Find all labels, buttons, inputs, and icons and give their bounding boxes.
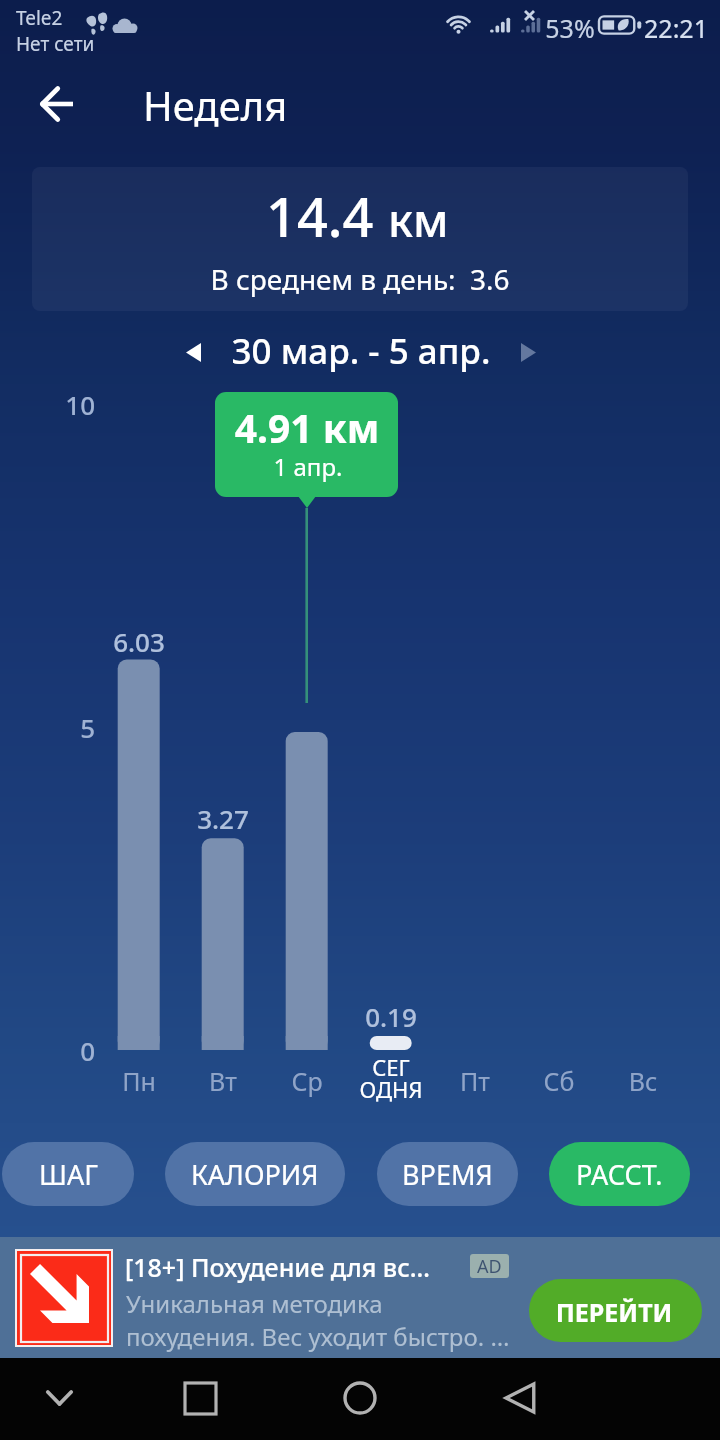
staticText: [18+] Похудение для вс… [125, 1250, 430, 1284]
staticText: км [388, 189, 449, 250]
staticText: 30 мар. - 5 апр. [141, 327, 581, 375]
button[interactable]: ВРЕМЯ [377, 1142, 518, 1206]
staticText: Неделя [143, 78, 288, 132]
button[interactable]: Recents [160, 1358, 240, 1438]
button[interactable] [529, 1279, 702, 1342]
staticText: Вт [163, 1064, 283, 1098]
staticText: 5 [0, 710, 95, 745]
staticText: Нет сети [16, 31, 95, 57]
staticText: 22:21 [606, 11, 720, 45]
staticText: 1 апр. [208, 450, 408, 483]
button[interactable]: Next week [505, 329, 551, 375]
staticText: 10 [0, 387, 95, 422]
button[interactable]: Hide keyboard [19, 1358, 99, 1438]
staticText: 4.91 км [197, 401, 417, 454]
staticText: ШАГ [39, 1156, 98, 1193]
staticText: Уникальная методика [126, 1287, 383, 1320]
staticText: ОДНЯ [321, 1074, 461, 1104]
staticText: ВРЕМЯ [402, 1156, 493, 1193]
button[interactable]: Previous week [170, 329, 216, 375]
staticText: СЕГ [321, 1052, 461, 1082]
staticText: 14.4 [266, 179, 374, 253]
staticText: Вс [583, 1064, 703, 1098]
staticText: 53% [515, 11, 625, 45]
staticText: 3.27 [138, 801, 308, 836]
button[interactable]: ШАГ [2, 1142, 134, 1206]
staticText: ПЕРЕЙТИ [504, 1295, 720, 1329]
staticText: РАССТ. [576, 1156, 663, 1193]
staticText: КАЛОРИЯ [191, 1156, 319, 1193]
button[interactable] [32, 167, 688, 311]
staticText: AD [477, 1254, 502, 1278]
staticText: Пн [79, 1064, 199, 1098]
staticText: Пт [415, 1064, 535, 1098]
staticText: Tele2 [16, 5, 63, 31]
staticText: Сб [499, 1064, 619, 1098]
button[interactable] [215, 392, 398, 497]
button[interactable]: РАССТ. [549, 1142, 690, 1206]
button[interactable]: Home [320, 1358, 400, 1438]
button[interactable] [0, 1237, 720, 1358]
staticText: 0 [0, 1033, 95, 1068]
staticText: похудения. Вес уходит быстро. … [126, 1320, 510, 1353]
staticText: 0.19 [306, 999, 476, 1034]
staticText: Ср [247, 1064, 367, 1098]
button[interactable]: КАЛОРИЯ [165, 1142, 345, 1206]
button[interactable]: Back [480, 1358, 560, 1438]
button[interactable]: Back [23, 71, 89, 137]
staticText: 6.03 [54, 624, 224, 659]
staticText: В среднем в день: 3.6 [100, 260, 620, 298]
